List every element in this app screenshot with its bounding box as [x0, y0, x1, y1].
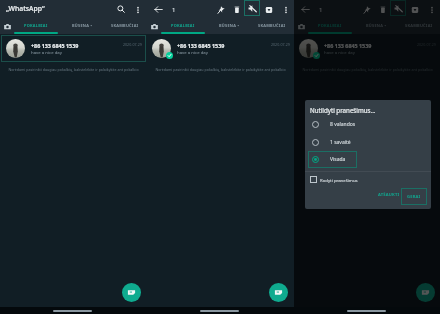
- button[interactable]: BŪSENA •: [207, 18, 251, 34]
- staticText: POKALBIAI: [24, 23, 48, 28]
- staticText: +86 133 6845 1539: [177, 42, 225, 49]
- staticText: ATŠAUKTI: [378, 192, 400, 198]
- staticText: Norėdami pasirinkti daugiau pokalbių, ba…: [302, 67, 433, 72]
- staticText: GERAI: [407, 194, 421, 200]
- staticText: Visada: [330, 156, 346, 163]
- button[interactable]: +86 133 6845 1539: [294, 35, 440, 62]
- button[interactable]: SKAMBUČIAI: [104, 18, 146, 34]
- staticText: Rodyti pranešimus: [320, 177, 358, 183]
- button[interactable]: GERAI: [401, 188, 427, 205]
- staticText: +86 133 6845 1539: [31, 42, 79, 49]
- staticText: 2020-07-29: [417, 42, 436, 47]
- staticText: SKAMBUČIAI: [258, 23, 286, 28]
- button[interactable]: +86 133 6845 1539: [1, 35, 146, 62]
- staticText: 2020-07-29: [123, 42, 142, 47]
- button[interactable]: More options: [426, 4, 437, 15]
- staticText: have a nice day: [177, 49, 208, 55]
- button[interactable]: Archive chat: [262, 3, 275, 16]
- button[interactable]: Rodyti pranešimus: [309, 175, 359, 184]
- staticText: SKAMBUČIAI: [111, 23, 139, 28]
- staticText: POKALBIAI: [171, 23, 195, 28]
- staticText: 1 savaitė: [330, 139, 351, 146]
- button[interactable]: BŪSENA •: [60, 18, 104, 34]
- staticText: „WhatsApp“: [6, 4, 45, 13]
- button[interactable]: Camera: [147, 19, 161, 33]
- staticText: 1: [172, 6, 176, 14]
- button[interactable]: Camera: [294, 19, 308, 33]
- button[interactable]: ATŠAUKTI: [373, 188, 405, 202]
- button[interactable]: Pin chat: [360, 3, 373, 16]
- staticText: have a nice day: [31, 49, 62, 55]
- staticText: 8 valandos: [330, 121, 356, 128]
- button[interactable]: SKAMBUČIAI: [398, 18, 440, 34]
- button[interactable]: New chat: [416, 283, 435, 302]
- button[interactable]: Delete chat: [230, 3, 243, 16]
- button[interactable]: Camera: [0, 19, 14, 33]
- staticText: POKALBIAI: [318, 23, 342, 28]
- staticText: BŪSENA •: [219, 23, 240, 28]
- button[interactable]: SKAMBUČIAI: [251, 18, 293, 34]
- button[interactable]: +86 133 6845 1539: [147, 35, 294, 62]
- staticText: 2020-07-29: [271, 42, 290, 47]
- button[interactable]: Mute notifications: [390, 0, 406, 16]
- staticText: BŪSENA •: [72, 23, 93, 28]
- staticText: have a nice day: [324, 49, 355, 55]
- button[interactable]: Back: [299, 3, 312, 16]
- staticText: Norėdami pasirinkti daugiau pokalbių, ba…: [155, 67, 286, 72]
- button[interactable]: Search: [113, 1, 129, 17]
- button[interactable]: Pin chat: [214, 3, 227, 16]
- staticText: 1: [319, 6, 323, 14]
- staticText: Nutildyti pranešimus...: [310, 106, 376, 114]
- button[interactable]: POKALBIAI: [159, 18, 207, 34]
- button[interactable]: More options: [131, 3, 144, 16]
- staticText: BŪSENA •: [366, 23, 387, 28]
- button[interactable]: Mute notifications: [244, 0, 260, 16]
- button[interactable]: Back: [152, 3, 165, 16]
- staticText: SKAMBUČIAI: [405, 23, 433, 28]
- staticText: +86 133 6845 1539: [324, 42, 372, 49]
- button[interactable]: 1 savaitė: [308, 134, 357, 151]
- button[interactable]: Delete chat: [376, 3, 389, 16]
- button[interactable]: More options: [280, 4, 291, 15]
- button[interactable]: POKALBIAI: [306, 18, 354, 34]
- button[interactable]: POKALBIAI: [12, 18, 60, 34]
- button[interactable]: BŪSENA •: [354, 18, 398, 34]
- button[interactable]: New chat: [122, 283, 141, 302]
- staticText: Norėdami pasirinkti daugiau pokalbių, ba…: [8, 67, 139, 72]
- button[interactable]: 8 valandos: [308, 116, 357, 133]
- button[interactable]: New chat: [269, 283, 288, 302]
- button[interactable]: Visada: [308, 151, 357, 168]
- button[interactable]: Archive chat: [408, 3, 421, 16]
